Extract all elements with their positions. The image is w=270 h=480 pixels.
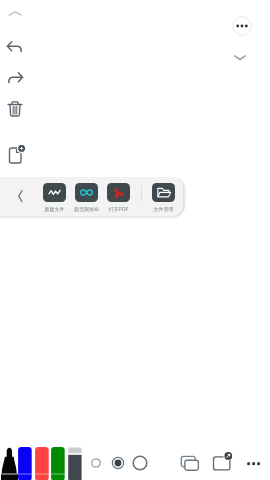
button[interactable]: Delete xyxy=(3,96,27,120)
button[interactable]: Pen color xyxy=(35,446,50,480)
button[interactable]: Redo xyxy=(3,66,27,90)
button[interactable]: Pen color xyxy=(18,446,33,480)
button[interactable]: Medium stroke xyxy=(108,453,128,473)
button[interactable]: Add page xyxy=(211,452,233,474)
button[interactable]: 文件管理 xyxy=(147,182,180,213)
button[interactable]: Undo xyxy=(3,35,27,59)
staticText: 文件管理 xyxy=(147,206,180,218)
button[interactable]: Pen color xyxy=(51,446,66,480)
button[interactable]: Eraser xyxy=(68,446,83,480)
staticText: 新建文件 xyxy=(38,206,71,218)
button[interactable]: Collapse xyxy=(6,4,25,23)
staticText: 打开PDF xyxy=(102,206,135,218)
button[interactable]: Back xyxy=(12,185,30,203)
button[interactable]: Expand xyxy=(233,48,251,66)
button[interactable]: Thin stroke xyxy=(87,454,105,472)
button[interactable]: 打开PDF xyxy=(102,182,135,213)
button[interactable]: Pages xyxy=(178,454,202,474)
button[interactable]: More xyxy=(242,452,265,475)
button[interactable]: More options xyxy=(231,15,253,37)
button[interactable]: Black pen xyxy=(1,446,18,480)
button[interactable]: Thick stroke xyxy=(130,453,150,473)
staticText: 新无限画布 xyxy=(70,206,103,218)
button[interactable]: 新建文件 xyxy=(38,182,71,213)
button[interactable]: 新无限画布 xyxy=(70,182,103,213)
button[interactable]: New page xyxy=(3,141,27,167)
